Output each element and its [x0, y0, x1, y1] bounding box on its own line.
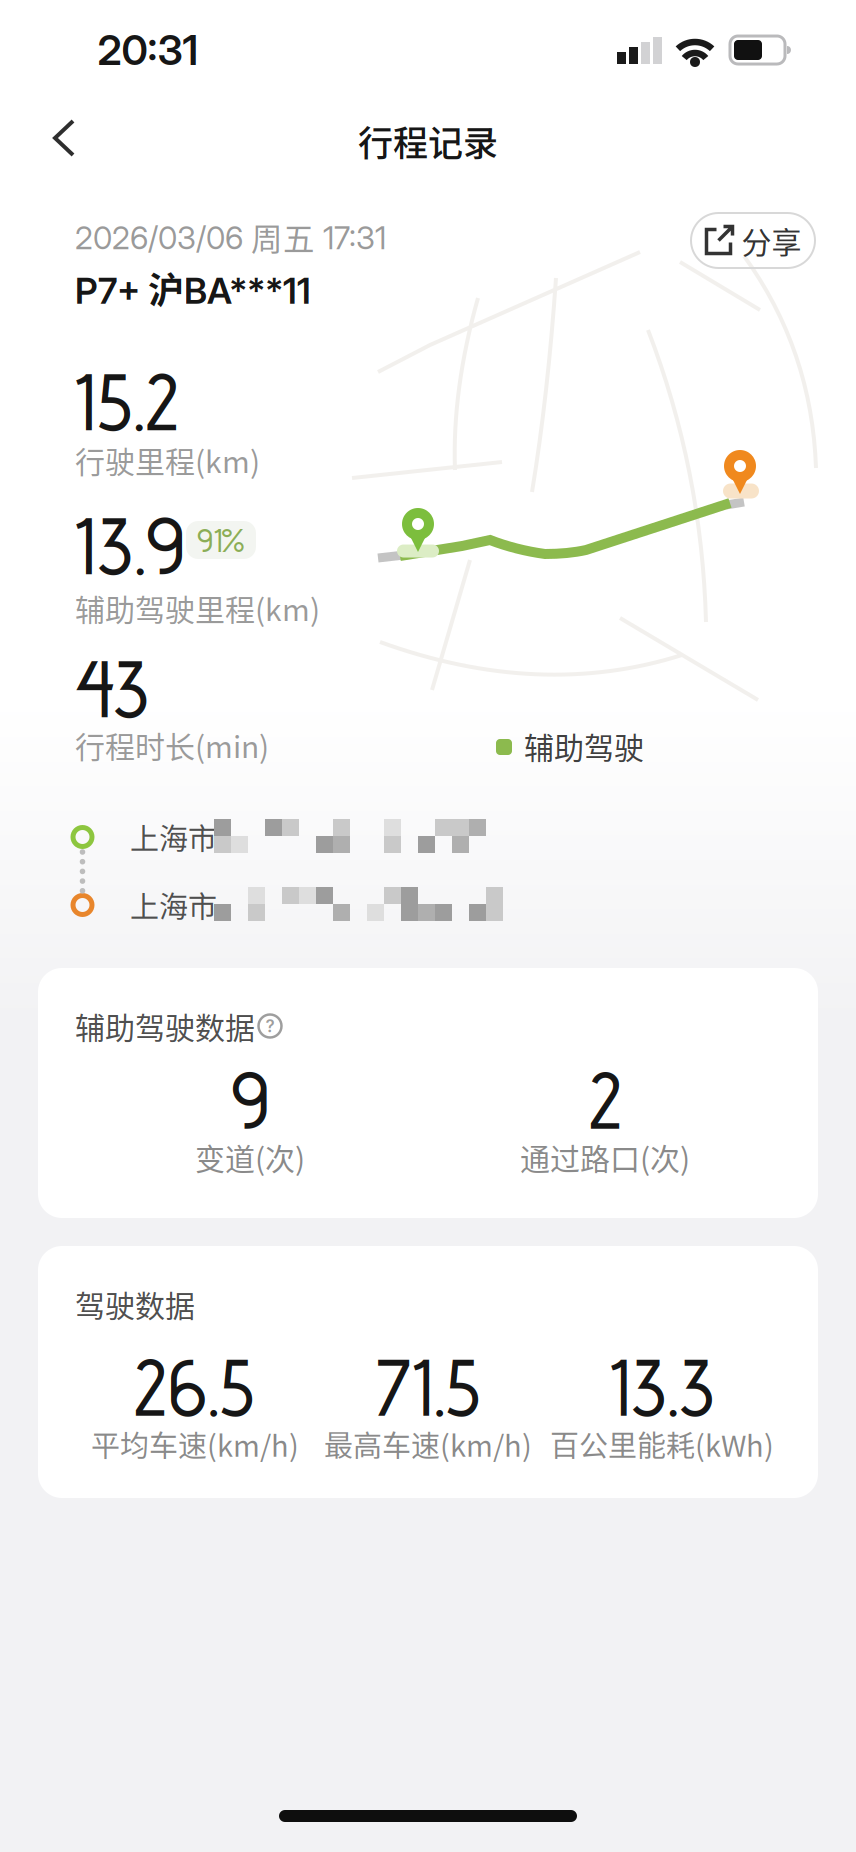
staticText: 辅助驾驶数据	[75, 1004, 255, 1048]
staticText: 20:31	[97, 25, 198, 75]
staticText: 15.2	[75, 353, 179, 449]
staticText: 通过路口(次)	[520, 1135, 690, 1179]
staticText: P7+ 沪BA***11	[75, 262, 311, 314]
staticText: 行程记录	[358, 116, 498, 166]
staticText: 上海市	[130, 816, 217, 858]
staticText: 辅助驾驶	[524, 724, 644, 768]
staticText: 2	[588, 1053, 621, 1147]
staticText: 最高车速(km/h)	[324, 1423, 532, 1465]
staticText: 9	[231, 1053, 269, 1147]
staticText: 行驶里程(km)	[75, 438, 260, 482]
staticText: 43	[75, 640, 149, 736]
staticText: 71.5	[375, 1340, 480, 1434]
staticText: 变道(次)	[195, 1135, 305, 1179]
staticText: 百公里能耗(kWh)	[550, 1423, 774, 1465]
staticText: 辅助驾驶里程(km)	[75, 586, 320, 630]
staticText: 13.3	[610, 1340, 714, 1434]
button[interactable]: 分享	[691, 213, 815, 268]
staticText: 26.5	[133, 1340, 254, 1434]
staticText: 91%	[197, 520, 245, 560]
staticText: 平均车速(km/h)	[91, 1423, 299, 1465]
staticText: ?	[265, 1016, 274, 1036]
staticText: 13.9	[75, 497, 185, 593]
staticText: 驾驶数据	[75, 1282, 195, 1326]
staticText: 2026/03/06 周五 17:31	[75, 214, 386, 260]
staticText: 行程时长(min)	[75, 723, 269, 767]
staticText: 上海市	[130, 884, 217, 926]
staticText: 分享	[741, 219, 801, 262]
button[interactable]	[51, 119, 77, 157]
